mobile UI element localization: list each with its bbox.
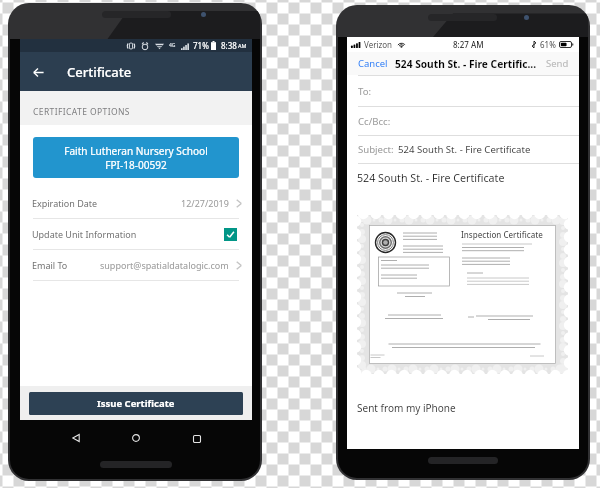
button[interactable]: Issue Certificate (29, 392, 243, 415)
staticText: 524 South St. - Fire Certific... (395, 57, 537, 71)
staticText: support@spatialdatalogic.com (100, 259, 229, 271)
button[interactable]: Send (546, 57, 569, 70)
button[interactable]: Cancel (358, 57, 388, 70)
staticText: 71% (193, 40, 209, 51)
button[interactable]: Home (126, 428, 146, 448)
staticText: 12/27/2019 (181, 197, 229, 209)
staticText: Issue Certificate (97, 397, 175, 410)
staticText: 4G (169, 42, 176, 49)
staticText: Sent from my iPhone (357, 401, 456, 415)
staticText: Cc/Bcc: (358, 115, 391, 128)
staticText: Verizon (364, 39, 393, 50)
staticText: Update Unit Information (32, 228, 137, 240)
staticText: 524 South St. - Fire Certificate (398, 143, 531, 156)
staticText: AM (238, 42, 247, 49)
staticText: To: (358, 85, 372, 98)
staticText: Email To (32, 259, 68, 271)
button[interactable]: Expiration Date (20, 188, 252, 218)
button[interactable]: To: (347, 76, 579, 106)
staticText: Cancel (358, 57, 388, 70)
staticText: Faith Lutheran Nursery School FPI-18-005… (64, 144, 208, 172)
staticText: Subject: (358, 143, 394, 156)
staticText: CERTIFICATE OPTIONS (33, 106, 130, 118)
button[interactable]: Navigate up (20, 54, 56, 90)
staticText: Send (546, 57, 569, 70)
staticText: Expiration Date (32, 197, 98, 209)
staticText: 8:38 (221, 40, 237, 51)
button[interactable]: Subject: (347, 136, 579, 163)
staticText: Inspection Certificate (461, 229, 543, 240)
staticText: 524 South St. - Fire Certificate (357, 171, 505, 186)
button[interactable]: Recent apps (187, 429, 207, 449)
button[interactable]: Email To (20, 250, 252, 280)
button[interactable]: Cc/Bcc: (347, 107, 579, 135)
staticText: 8:27 AM (453, 39, 484, 50)
staticText: 61% (540, 39, 556, 50)
staticText: Certificate (67, 63, 132, 81)
button[interactable]: Back (66, 428, 86, 448)
button[interactable]: Update Unit Information (20, 219, 252, 249)
button[interactable]: Faith Lutheran Nursery School FPI-18-005… (33, 137, 239, 178)
